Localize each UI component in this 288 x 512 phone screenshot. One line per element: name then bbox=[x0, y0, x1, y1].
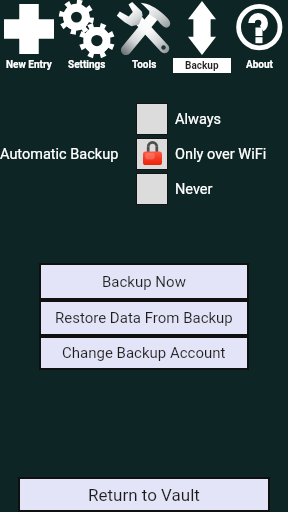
staticText: Backup Now bbox=[102, 273, 186, 291]
staticText: New Entry bbox=[6, 59, 52, 71]
button[interactable]: Tools bbox=[115, 0, 173, 74]
staticText: Change Backup Account bbox=[62, 344, 226, 362]
staticText: Tools bbox=[132, 59, 157, 71]
button[interactable]: Return to Vault bbox=[20, 479, 268, 510]
staticText: Never bbox=[175, 181, 213, 198]
staticText: Automatic Backup bbox=[0, 146, 119, 163]
button[interactable]: Restore Data From Backup bbox=[41, 302, 247, 334]
button[interactable]: Settings bbox=[58, 0, 116, 74]
button[interactable]: Only over WiFi bbox=[137, 139, 167, 169]
staticText: About bbox=[246, 59, 273, 71]
staticText: Restore Data From Backup bbox=[55, 309, 233, 327]
button[interactable]: Backup Now bbox=[41, 265, 247, 298]
staticText: Return to Vault bbox=[88, 485, 200, 505]
button[interactable]: Backup bbox=[173, 0, 231, 74]
button[interactable]: New Entry bbox=[0, 0, 58, 74]
button[interactable]: About bbox=[230, 0, 288, 74]
staticText: Always bbox=[175, 111, 222, 128]
button[interactable]: Change Backup Account bbox=[41, 338, 247, 368]
staticText: Settings bbox=[68, 59, 106, 71]
staticText: Backup bbox=[185, 60, 219, 72]
staticText: Only over WiFi bbox=[175, 146, 267, 163]
